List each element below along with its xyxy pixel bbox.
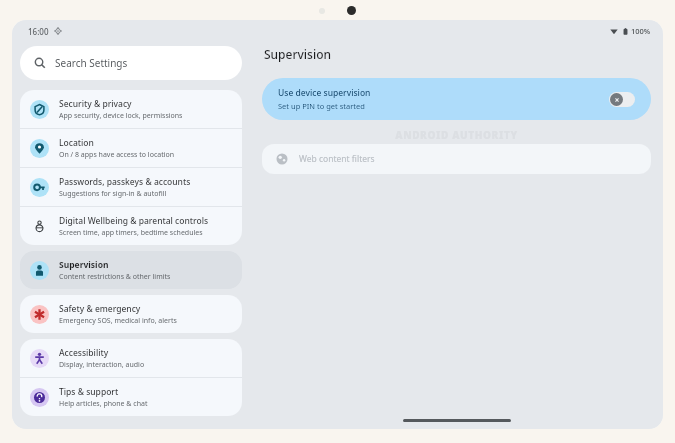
staticText: On / 8 apps have access to location [59,150,175,160]
staticText: Screen time, app timers, bedtime schedul… [59,228,203,238]
button[interactable]: Digital Wellbeing & parental controls [20,207,242,245]
button[interactable]: Passwords, passkeys & accounts [20,168,242,206]
button[interactable]: Location [20,129,242,167]
staticText: Display, interaction, audio [59,360,145,370]
staticText: Emergency SOS, medical info, alerts [59,316,177,326]
button[interactable]: Security & privacy [20,90,242,128]
button[interactable]: Tips & support [20,378,242,416]
staticText: 16:00 [28,26,49,37]
staticText: Passwords, passkeys & accounts [59,176,191,188]
button[interactable]: Use device supervision [262,78,651,120]
staticText: Location [59,137,94,149]
staticText: ANDROID AUTHORITY [395,128,518,142]
button[interactable]: Safety & emergency [20,295,242,333]
staticText: App security, device lock, permissions [59,111,183,121]
staticText: 100% [631,26,651,36]
staticText: Digital Wellbeing & parental controls [59,215,209,227]
staticText: Safety & emergency [59,303,141,315]
button[interactable]: Supervision [20,251,242,289]
staticText: Content restrictions & other limits [59,272,171,282]
button[interactable]: Accessibility [20,339,242,377]
staticText: Set up PIN to get started [278,101,365,111]
button[interactable]: Toggle device supervision [609,92,635,107]
staticText: Supervision [59,259,109,271]
staticText: Search Settings [55,56,128,70]
staticText: Accessibility [59,347,109,359]
staticText: Suggestions for sign-in & autofill [59,189,167,199]
button[interactable]: Search Settings [20,46,242,80]
staticText: Security & privacy [59,98,132,110]
button[interactable]: Web content filters [262,144,651,174]
staticText: Supervision [264,46,332,62]
staticText: Web content filters [299,153,375,165]
staticText: Use device supervision [278,87,371,99]
staticText: Help articles, phone & chat [59,399,148,409]
staticText: Tips & support [59,386,119,398]
